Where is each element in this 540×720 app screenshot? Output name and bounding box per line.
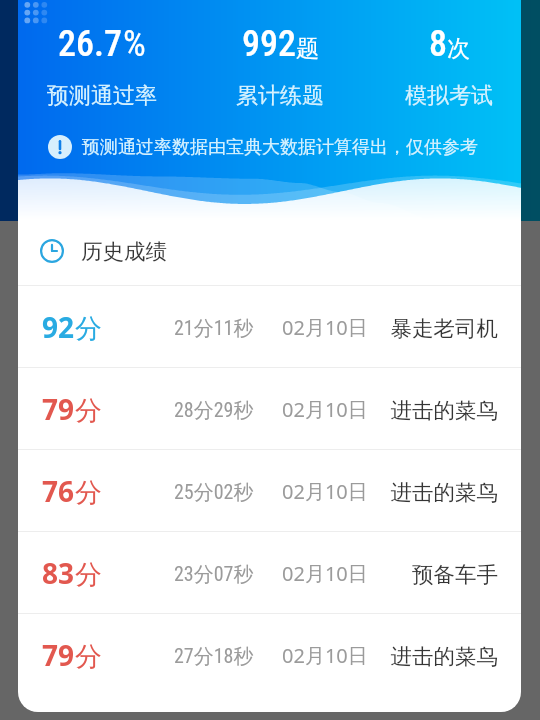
staticText: 预备车手 xyxy=(388,561,498,588)
staticText: 02月10日 xyxy=(282,314,368,341)
staticText: 进击的菜鸟 xyxy=(388,397,498,424)
staticText: 28分29秒 xyxy=(174,398,254,423)
staticText: 分 xyxy=(75,476,102,510)
staticText: 23分07秒 xyxy=(174,562,254,587)
staticText: 02月10日 xyxy=(282,478,368,505)
staticText: 83 xyxy=(42,554,75,592)
staticText: 79 xyxy=(42,390,75,428)
staticText: 暴走老司机 xyxy=(388,315,498,342)
button[interactable]: 79 xyxy=(18,614,521,695)
button[interactable]: 79 xyxy=(18,368,521,449)
staticText: 02月10日 xyxy=(282,396,368,423)
button[interactable]: 说明 xyxy=(48,135,478,159)
staticText: 25分02秒 xyxy=(174,480,254,505)
staticText: 21分11秒 xyxy=(174,316,254,341)
other: 说明 xyxy=(48,135,72,159)
staticText: 27分18秒 xyxy=(174,644,254,669)
staticText: 进击的菜鸟 xyxy=(388,479,498,506)
staticText: 题 xyxy=(296,34,319,63)
staticText: 分 xyxy=(75,640,102,674)
staticText: 02月10日 xyxy=(282,560,368,587)
staticText: 分 xyxy=(75,558,102,592)
staticText: 次 xyxy=(447,34,470,63)
staticText: % xyxy=(123,23,146,65)
staticText: 26.7 xyxy=(58,23,123,65)
staticText: 预测通过率 xyxy=(47,82,157,110)
staticText: 992 xyxy=(242,23,296,65)
button[interactable]: 92 xyxy=(18,286,521,367)
staticText: 分 xyxy=(75,394,102,428)
button[interactable]: 历史成绩 xyxy=(18,221,521,285)
staticText: 历史成绩 xyxy=(81,238,167,265)
button[interactable]: 76 xyxy=(18,450,521,531)
staticText: 进击的菜鸟 xyxy=(388,643,498,670)
staticText: 分 xyxy=(75,312,102,346)
staticText: 模拟考试 xyxy=(405,82,493,110)
staticText: 79 xyxy=(42,636,75,674)
staticText: 预测通过率数据由宝典大数据计算得出，仅供参考 xyxy=(82,136,478,159)
staticText: 76 xyxy=(42,472,75,510)
staticText: 8 xyxy=(429,23,447,65)
staticText: 92 xyxy=(42,308,75,346)
staticText: 累计练题 xyxy=(236,82,324,110)
staticText: 02月10日 xyxy=(282,642,368,669)
button[interactable]: 83 xyxy=(18,532,521,613)
